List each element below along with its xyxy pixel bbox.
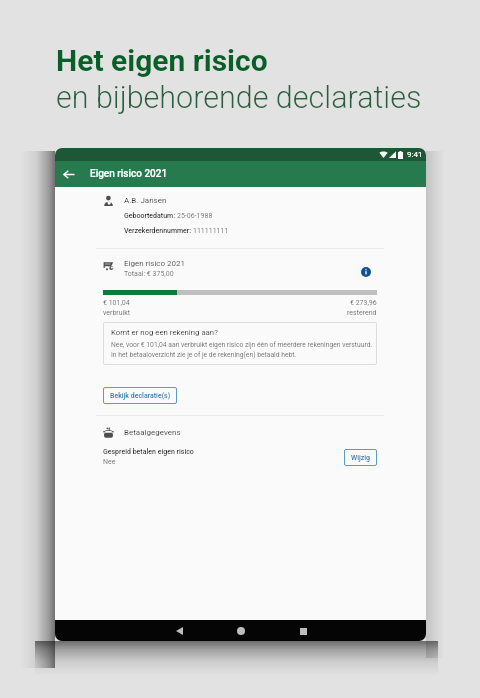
staticText: Bekijk declaratie(s)	[110, 392, 171, 400]
button[interactable]: Terug	[168, 620, 190, 641]
staticText: Geboortedatum:	[124, 212, 177, 220]
staticText: Eigen risico 2021	[90, 168, 168, 180]
button[interactable]: Recente apps	[292, 620, 314, 641]
staticText: Eigen risico 2021	[124, 259, 186, 268]
staticText: € 101,04	[103, 299, 130, 307]
staticText: Nee	[103, 458, 116, 466]
button[interactable]: Home	[230, 620, 252, 641]
staticText: € 273,96	[350, 299, 377, 307]
button[interactable]: Meer informatie	[356, 262, 375, 281]
staticText: Komt er nog een rekening aan?	[111, 328, 218, 337]
staticText: Betaalgegevens	[124, 428, 181, 437]
staticText: 111111111	[193, 227, 229, 235]
staticText: A.B. Jansen	[124, 196, 167, 205]
staticText: 25-06-1988	[177, 212, 213, 220]
staticText: Gespreid betalen eigen risico	[103, 448, 194, 456]
staticText: resterend	[347, 309, 377, 317]
staticText: 9:41	[407, 150, 423, 159]
staticText: Totaal: € 375,00	[124, 270, 174, 278]
button[interactable]: Terug	[57, 162, 81, 186]
staticText: Nee, voor € 101,04 aan verbruikt eigen r…	[111, 341, 374, 358]
staticText: Wijzig	[351, 454, 370, 462]
button[interactable]: Wijzig	[344, 449, 377, 466]
staticText: verbruikt	[103, 309, 131, 317]
button[interactable]: Bekijk declaratie(s)	[103, 387, 177, 404]
staticText: Verzekerdennummer:	[124, 227, 193, 235]
staticText: Het eigen risico	[56, 43, 268, 78]
staticText: en bijbehorende declaraties	[56, 80, 422, 116]
